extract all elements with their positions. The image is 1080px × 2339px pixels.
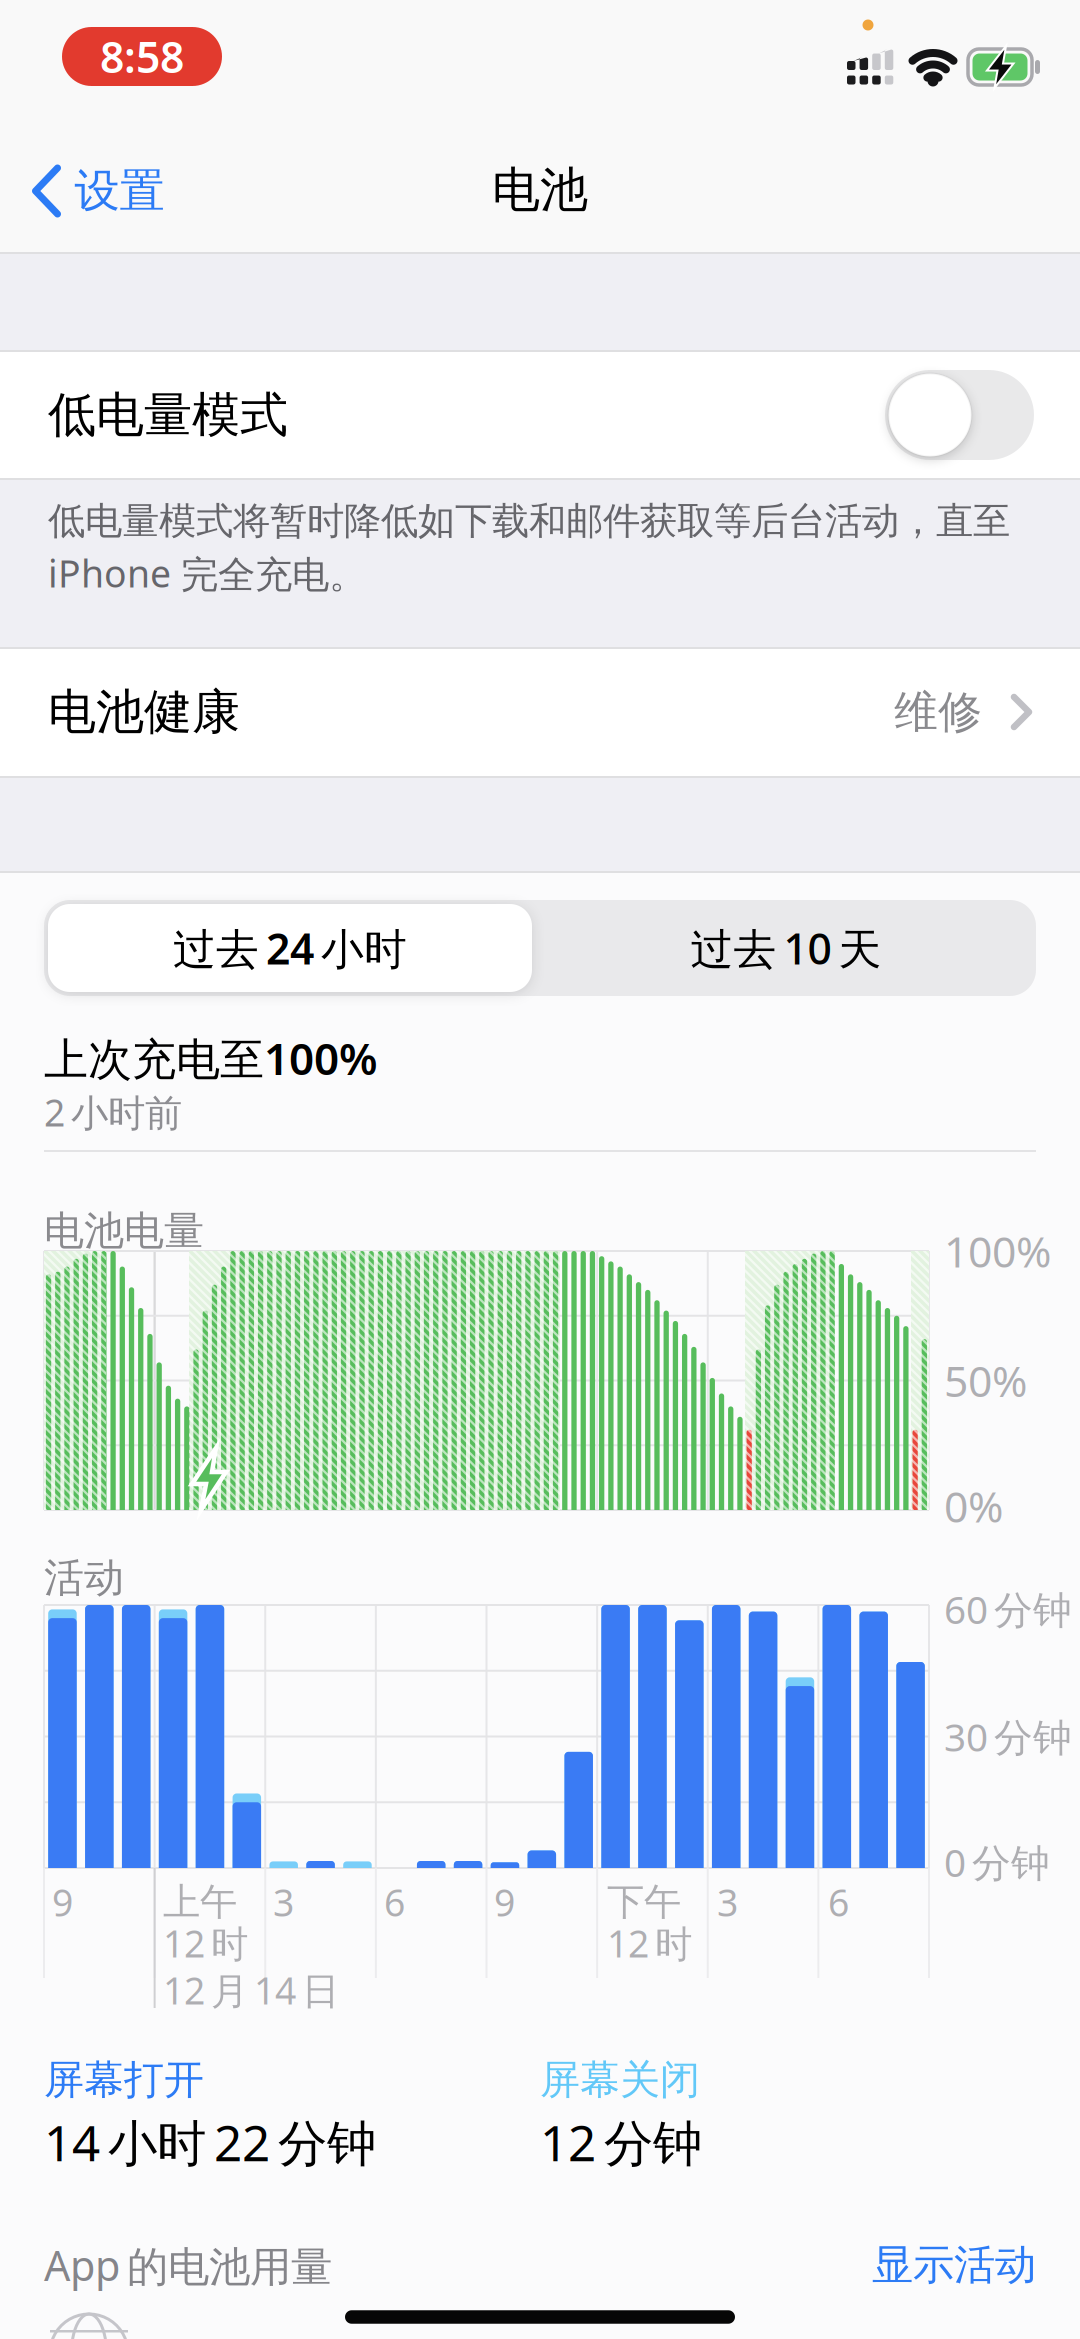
staticText: 6	[384, 1877, 405, 1927]
button[interactable]: 低电量模式	[0, 353, 1080, 477]
staticText: 12 月 14 日	[163, 1965, 339, 2015]
staticText: 100%	[944, 1223, 1051, 1279]
staticText: 60 分钟	[944, 1583, 1072, 1635]
staticText: 低电量模式	[48, 385, 288, 444]
staticText: 50%	[944, 1352, 1027, 1409]
staticText: 电池	[492, 160, 588, 219]
staticText: 设置	[74, 163, 164, 219]
staticText: 9	[494, 1877, 515, 1927]
staticText: 屏幕打开	[44, 2055, 204, 2104]
staticText: 活动	[44, 1553, 124, 1602]
staticText: 过去 24 小时	[173, 920, 407, 976]
staticText: App 的电池用量	[44, 2237, 332, 2292]
button[interactable]: 过去 24 小时	[48, 904, 532, 992]
staticText: 6	[828, 1877, 849, 1927]
staticText: 12 分钟	[540, 2109, 702, 2175]
staticText: 9	[52, 1877, 73, 1927]
staticText: 8:58	[100, 28, 184, 85]
staticText: 3	[273, 1877, 294, 1927]
button[interactable]: 电池健康	[0, 649, 1080, 774]
staticText: 12 时	[163, 1918, 248, 1968]
staticText: 电池电量	[44, 1206, 204, 1255]
button[interactable]: 正在录制	[62, 27, 222, 86]
staticText: 12 时	[607, 1918, 692, 1968]
staticText: 屏幕关闭	[540, 2055, 700, 2104]
staticText: 0%	[944, 1478, 1003, 1534]
staticText: 上午	[163, 1879, 237, 1925]
staticText: 下午	[607, 1879, 681, 1925]
button[interactable]: 设置	[33, 163, 164, 219]
staticText: iPhone 完全充电。	[48, 548, 366, 598]
button[interactable]: 显示活动	[636, 2240, 1036, 2290]
staticText: 低电量模式将暂时降低如下载和邮件获取等后台活动，直至	[48, 498, 1010, 544]
staticText: 电池健康	[48, 682, 240, 741]
staticText: 0 分钟	[944, 1836, 1050, 1888]
staticText: 3	[717, 1877, 738, 1927]
staticText: 显示活动	[872, 2240, 1036, 2290]
staticText: 30 分钟	[944, 1711, 1072, 1762]
staticText: 14 小时 22 分钟	[44, 2109, 376, 2175]
staticText: 维修	[894, 685, 982, 739]
staticText: 上次充电至100%	[44, 1029, 378, 1087]
staticText: 2 小时前	[44, 1087, 182, 1137]
button[interactable]: 过去 10 天	[542, 904, 1030, 992]
staticText: 过去 10 天	[690, 920, 881, 976]
